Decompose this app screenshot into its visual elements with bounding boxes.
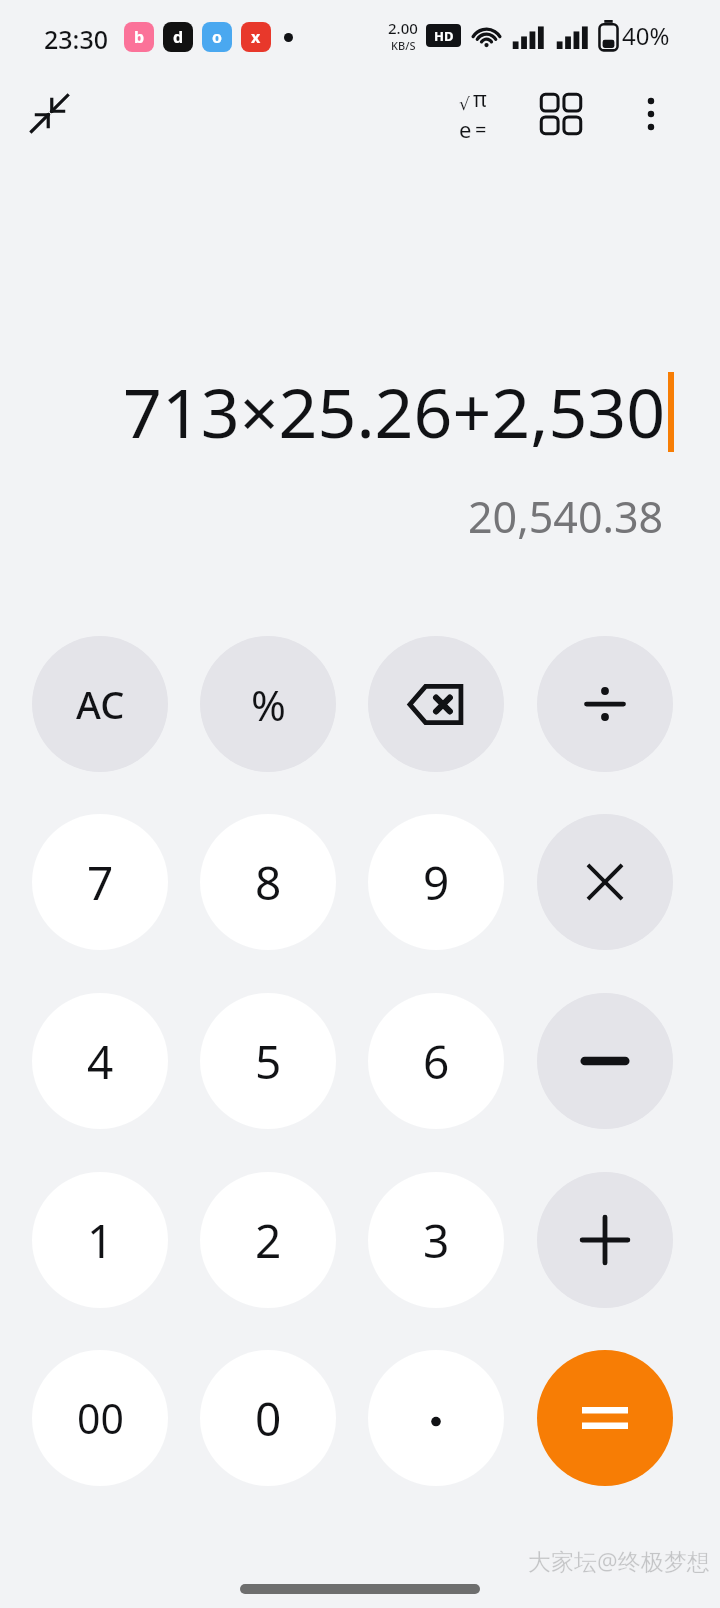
button[interactable]: 7 [32, 814, 168, 950]
staticText: x [251, 26, 261, 48]
staticText: 2 [255, 1209, 282, 1272]
button[interactable]: 8 [200, 814, 336, 950]
staticText: 40% [622, 19, 670, 52]
button[interactable]: 00 [32, 1350, 168, 1486]
staticText: 大家坛@终极梦想 [528, 1545, 710, 1576]
staticText: 2.00 [388, 18, 418, 38]
button[interactable]: More options [618, 81, 684, 147]
staticText: 4 [87, 1030, 114, 1093]
staticText: KB/S [391, 38, 416, 53]
staticText: 1 [87, 1209, 114, 1272]
staticText: 9 [423, 851, 450, 914]
button[interactable]: Multiply [537, 814, 673, 950]
button[interactable] [368, 1350, 504, 1486]
staticText: 6 [423, 1030, 450, 1093]
staticText: 00 [77, 1390, 124, 1446]
button[interactable]: 2 [200, 1172, 336, 1308]
staticText: 20,540.38 [468, 487, 664, 546]
staticText: π [473, 85, 487, 114]
staticText: 0 [255, 1387, 282, 1450]
button[interactable]: % [200, 636, 336, 772]
button[interactable]: 9 [368, 814, 504, 950]
staticText: √ [459, 94, 470, 114]
staticText: HD [434, 27, 454, 45]
button[interactable]: Converters [528, 81, 594, 147]
button[interactable]: Minus [537, 993, 673, 1129]
staticText: b [134, 26, 145, 48]
staticText: 23:30 [44, 22, 109, 56]
staticText: 7 [87, 851, 114, 914]
staticText: d [173, 26, 184, 48]
staticText: e [459, 114, 472, 144]
button[interactable]: Divide [537, 636, 673, 772]
button[interactable]: 6 [368, 993, 504, 1129]
button[interactable]: AC [32, 636, 168, 772]
button[interactable]: Collapse [18, 81, 82, 145]
button[interactable]: Scientific mode [440, 81, 506, 147]
button[interactable]: Plus [537, 1172, 673, 1308]
staticText: AC [76, 678, 125, 730]
button[interactable]: 1 [32, 1172, 168, 1308]
staticText: 5 [255, 1030, 282, 1093]
staticText: 8 [255, 851, 282, 914]
staticText: o [212, 26, 223, 48]
button[interactable]: 4 [32, 993, 168, 1129]
staticText: 713×25.26+2,530 [123, 365, 666, 458]
button[interactable]: 5 [200, 993, 336, 1129]
button[interactable]: 0 [200, 1350, 336, 1486]
button[interactable]: Backspace [368, 636, 504, 772]
button[interactable]: 3 [368, 1172, 504, 1308]
staticText: 3 [423, 1209, 450, 1272]
staticText: % [251, 676, 286, 733]
button[interactable]: Equals [537, 1350, 673, 1486]
staticText: = [475, 116, 487, 143]
